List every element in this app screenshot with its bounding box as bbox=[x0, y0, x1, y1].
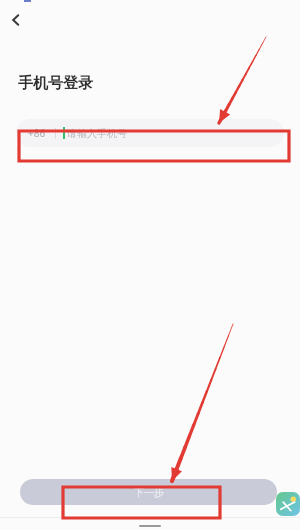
staticText: 手机号登录 bbox=[18, 74, 93, 93]
button[interactable]: +86 bbox=[16, 119, 284, 147]
button[interactable]: Floating assistant bbox=[276, 492, 300, 516]
staticText: 下一步 bbox=[134, 486, 164, 499]
button[interactable]: 下一步 bbox=[20, 479, 277, 505]
staticText: +86 bbox=[28, 126, 46, 140]
staticText: 请输入手机号 bbox=[67, 127, 127, 140]
button[interactable]: Back bbox=[2, 6, 30, 34]
